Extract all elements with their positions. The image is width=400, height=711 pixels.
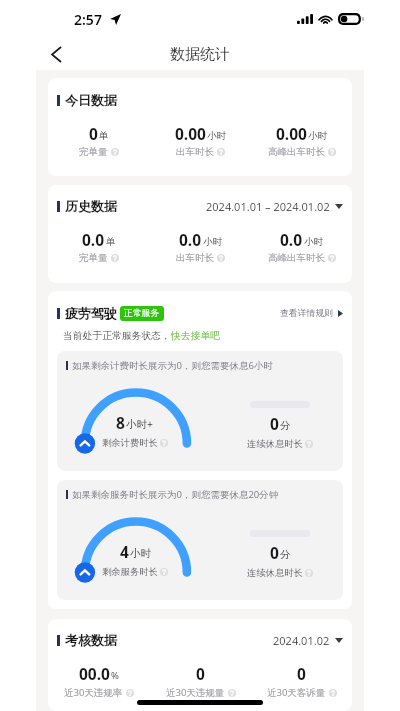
staticText: 0: [297, 663, 306, 684]
staticText: 小时+: [126, 417, 154, 431]
staticText: 查看详情规则: [280, 308, 333, 319]
staticText: 疲劳驾驶: [65, 305, 117, 321]
staticText: 高峰出车时长: [268, 146, 325, 158]
staticText: 正常服务: [124, 308, 160, 319]
staticText: 小时: [207, 130, 226, 142]
staticText: 0: [270, 413, 279, 434]
staticText: 当前处于正常服务状态，: [63, 330, 171, 342]
staticText: 剩余服务时长: [102, 566, 158, 578]
staticText: 完单量: [79, 252, 108, 264]
staticText: 如果剩余计费时长展示为0，则您需要休息6小时: [72, 359, 273, 372]
staticText: 0.00: [175, 123, 206, 144]
staticText: 0: [89, 123, 98, 144]
staticText: 单: [106, 236, 116, 248]
staticText: 2024.01.02: [273, 633, 330, 648]
staticText: 近30天客诉量: [267, 686, 326, 699]
staticText: %: [111, 669, 119, 682]
staticText: 2024.01.01 – 2024.01.02: [206, 199, 330, 214]
staticText: 出车时长: [176, 252, 214, 264]
staticText: 0.00: [276, 123, 307, 144]
staticText: 连续休息时长: [247, 438, 303, 450]
staticText: 出车时长: [176, 146, 214, 158]
staticText: 0: [270, 542, 279, 563]
staticText: 剩余计费时长: [102, 437, 158, 449]
staticText: 2:57: [74, 10, 102, 29]
staticText: 考核数据: [65, 632, 117, 648]
staticText: 完单量: [79, 146, 108, 158]
staticText: 今日数据: [65, 92, 117, 108]
staticText: 分: [280, 548, 291, 561]
staticText: 0.0: [179, 229, 202, 250]
staticText: 连续休息时长: [247, 567, 303, 579]
staticText: 小时: [203, 236, 222, 248]
button[interactable]: 2024.01.01 – 2024.01.02: [206, 199, 343, 214]
staticText: 快去接单吧: [171, 330, 220, 342]
staticText: 分: [280, 419, 291, 432]
staticText: 0.0: [280, 229, 303, 250]
staticText: 历史数据: [65, 198, 117, 214]
staticText: 小时: [308, 130, 327, 142]
staticText: 如果剩余服务时长展示为0，则您需要休息20分钟: [72, 488, 279, 501]
staticText: 高峰出车时长: [268, 252, 325, 264]
button[interactable]: 查看详情规则: [280, 308, 343, 319]
staticText: 00.0: [79, 663, 110, 684]
button[interactable]: 2024.01.02: [273, 633, 343, 648]
staticText: 小时: [304, 236, 323, 248]
staticText: 4: [120, 541, 129, 562]
staticText: 小时: [130, 547, 151, 560]
staticText: 近30天违规量: [166, 686, 225, 699]
staticText: 数据统计: [170, 45, 230, 64]
staticText: 0.0: [82, 229, 105, 250]
staticText: 8: [116, 412, 125, 433]
button[interactable]: Back: [45, 43, 67, 65]
button[interactable]: 正常服务: [124, 308, 160, 319]
staticText: 近30天违规率: [64, 686, 123, 699]
staticText: 0: [196, 663, 205, 684]
staticText: 单: [99, 130, 109, 142]
